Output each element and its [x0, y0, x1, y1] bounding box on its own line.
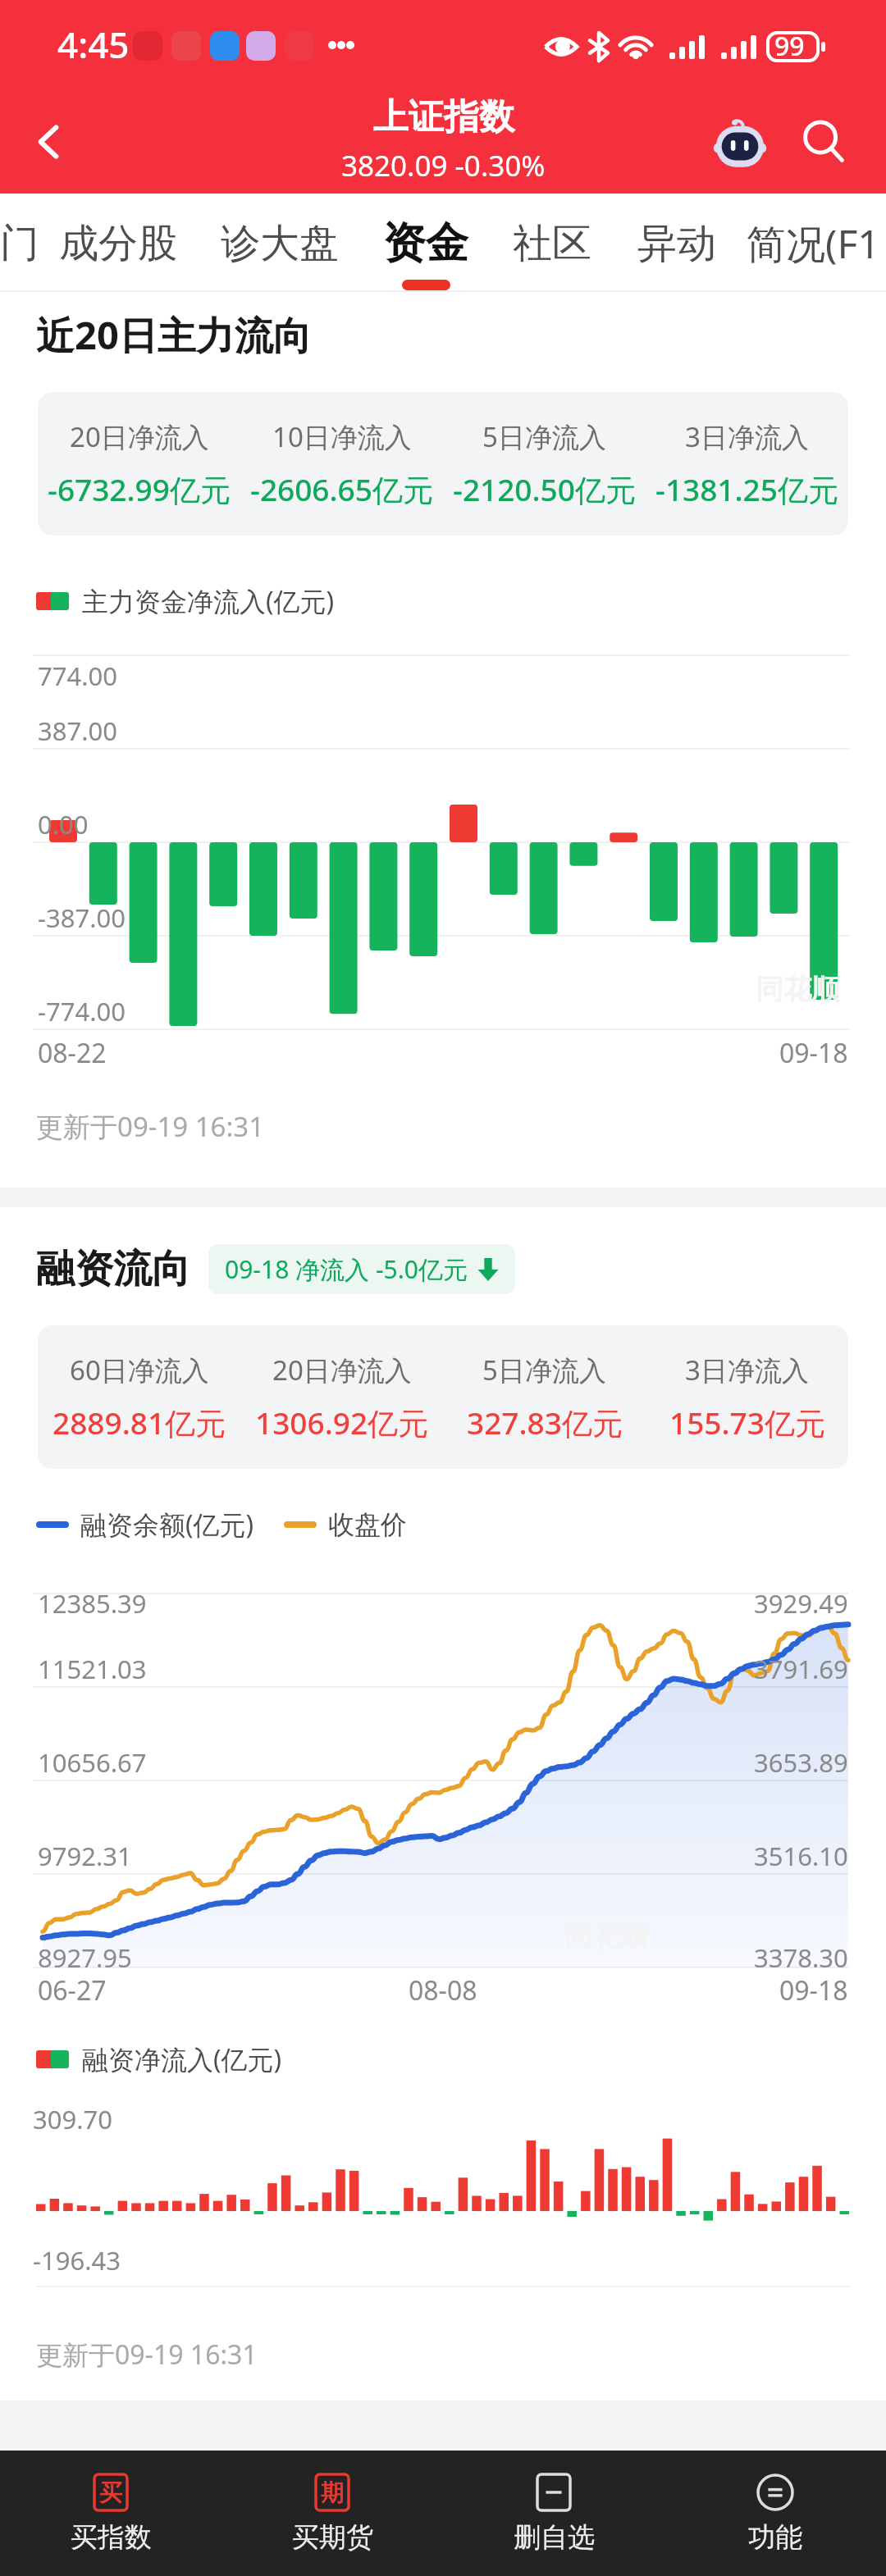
staticText: 社区 [513, 219, 591, 268]
staticText: 3378.30 [754, 1940, 848, 1975]
button[interactable]: AI assistant [701, 103, 779, 181]
staticText: 309.70 [33, 2102, 112, 2136]
staticText: -2120.50亿元 [453, 468, 636, 510]
staticText: -774.00 [38, 994, 126, 1028]
staticText: 5日净流入 [482, 1352, 606, 1388]
staticText: 60日净流入 [70, 1352, 209, 1388]
staticText: 0.00 [38, 807, 89, 841]
staticText: 主力资金净流入(亿元) [82, 583, 335, 619]
staticText: 09-18 [779, 1035, 848, 1071]
staticText: 3820.09 -0.30% [341, 146, 546, 185]
staticText: 20日净流入 [272, 1352, 412, 1388]
staticText: 买指数 [71, 2520, 152, 2555]
button[interactable]: 20日净流入 [38, 392, 848, 536]
button[interactable]: 异动 [613, 194, 741, 292]
button[interactable]: 门 [0, 194, 38, 292]
staticText: -196.43 [33, 2243, 121, 2277]
staticText: 简况(F1 [747, 217, 880, 271]
staticText: 异动 [637, 219, 716, 268]
staticText: 更新于09-19 16:31 [36, 2337, 258, 2373]
staticText: 近20日主力流向 [36, 308, 312, 361]
staticText: 资金 [383, 217, 468, 271]
staticText: 功能 [748, 2520, 802, 2555]
staticText: 8927.95 [38, 1940, 132, 1975]
staticText: 买期货 [292, 2520, 373, 2555]
staticText: 5日净流入 [482, 418, 606, 455]
staticText: 155.73亿元 [669, 1402, 825, 1443]
staticText: 3516.10 [754, 1839, 848, 1873]
staticText: 9792.31 [38, 1839, 132, 1873]
staticText: -2606.65亿元 [250, 468, 433, 510]
staticText: 同花顺 [756, 972, 839, 1007]
staticText: 买 [99, 2478, 122, 2507]
staticText: 327.83亿元 [467, 1402, 623, 1443]
staticText: 成分股 [59, 219, 177, 268]
button[interactable]: 诊大盘 [199, 194, 361, 292]
button[interactable]: Search [784, 103, 863, 181]
button[interactable]: 功能 [664, 2451, 886, 2576]
staticText: 3日净流入 [685, 418, 809, 455]
staticText: 09-18 [779, 1972, 848, 2008]
staticText: 收盘价 [328, 1508, 407, 1541]
staticText: 08-22 [38, 1035, 107, 1071]
staticText: -6732.99亿元 [48, 468, 231, 510]
button[interactable]: 社区 [491, 194, 613, 292]
staticText: 4:45 [57, 20, 130, 69]
staticText: 期 [321, 2478, 344, 2507]
button[interactable]: Back [0, 90, 98, 194]
staticText: 融资余额(亿元) [80, 1507, 254, 1543]
staticText: 12385.39 [38, 1586, 147, 1621]
button[interactable]: 资金 [361, 194, 491, 292]
staticText: 门 [0, 219, 38, 268]
staticText: 同花顺 [564, 1918, 648, 1954]
staticText: 08-08 [409, 1972, 477, 2008]
button[interactable]: 09-18 净流入 -5.0亿元 [208, 1244, 515, 1294]
staticText: 3929.49 [754, 1586, 848, 1621]
button[interactable]: 期 [221, 2451, 443, 2576]
staticText: -387.00 [38, 900, 126, 935]
button[interactable]: 60日净流入 [38, 1325, 848, 1469]
staticText: 2889.81亿元 [53, 1402, 226, 1443]
staticText: 3日净流入 [685, 1352, 809, 1388]
staticText: 融资流向 [36, 1245, 190, 1293]
staticText: 774.00 [38, 659, 117, 693]
staticText: 3653.89 [754, 1745, 848, 1780]
staticText: 1306.92亿元 [255, 1402, 429, 1443]
staticText: 20日净流入 [70, 418, 209, 455]
staticText: 更新于09-19 16:31 [36, 1108, 265, 1145]
staticText: 10日净流入 [272, 418, 412, 455]
button[interactable]: 删自选 [443, 2451, 664, 2576]
staticText: 06-27 [38, 1972, 107, 2008]
staticText: 融资净流入(亿元) [82, 2041, 282, 2077]
button[interactable]: 简况(F1 [741, 194, 886, 292]
staticText: 上证指数 [373, 95, 514, 139]
button[interactable]: 买 [0, 2451, 221, 2576]
staticText: 诊大盘 [221, 219, 339, 268]
button[interactable]: 成分股 [38, 194, 199, 292]
staticText: 3791.69 [754, 1652, 848, 1686]
staticText: 11521.03 [38, 1652, 147, 1686]
staticText: 删自选 [514, 2520, 595, 2555]
staticText: 387.00 [38, 714, 117, 748]
staticText: 10656.67 [38, 1745, 147, 1780]
staticText: 99 [774, 28, 805, 64]
staticText: 09-18 净流入 -5.0亿元 [225, 1252, 468, 1286]
staticText: -1381.25亿元 [655, 468, 838, 510]
